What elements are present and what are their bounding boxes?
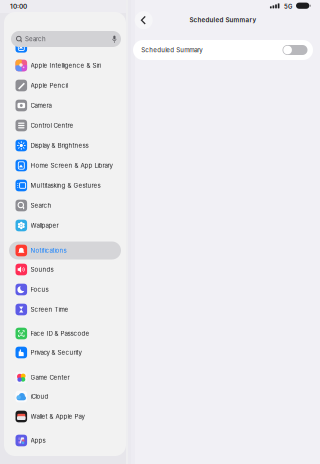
staticText: Camera bbox=[30, 102, 51, 109]
button[interactable]: Sounds bbox=[9, 260, 121, 278]
button[interactable]: Screen Time bbox=[9, 300, 121, 318]
staticText: Apple Intelligence & Siri bbox=[30, 62, 100, 69]
button[interactable]: Privacy & Security bbox=[9, 343, 121, 361]
button[interactable]: Multitasking & Gestures bbox=[9, 176, 121, 194]
staticText: Sounds bbox=[30, 266, 53, 273]
button[interactable]: Home Screen & App Library bbox=[9, 156, 121, 174]
button[interactable]: Camera bbox=[9, 96, 121, 114]
staticText: Wallpaper bbox=[30, 222, 58, 229]
button[interactable]: Wallet & Apple Pay bbox=[9, 407, 121, 425]
button[interactable]: Back bbox=[135, 11, 153, 29]
staticText: Apple Pencil bbox=[30, 82, 67, 89]
button[interactable]: Face ID & Passcode bbox=[9, 324, 121, 342]
button[interactable]: Display & Brightness bbox=[9, 136, 121, 154]
button[interactable]: Game Center bbox=[9, 368, 121, 386]
staticText: 5G bbox=[284, 3, 292, 10]
staticText: 10:00 bbox=[10, 3, 27, 10]
staticText: Apps bbox=[30, 437, 45, 444]
button[interactable]: Wallpaper bbox=[9, 216, 121, 234]
button[interactable]: Scheduled Summary bbox=[133, 40, 313, 60]
button[interactable]: iCloud bbox=[9, 387, 121, 405]
button[interactable]: Notifications bbox=[9, 241, 121, 259]
staticText: Home Screen & App Library bbox=[30, 162, 112, 169]
button[interactable]: Apple Pencil bbox=[9, 76, 121, 94]
staticText: Display & Brightness bbox=[30, 142, 88, 149]
button[interactable]: Apps bbox=[9, 431, 121, 449]
staticText: Scheduled Summary bbox=[189, 16, 256, 24]
staticText: Privacy & Security bbox=[30, 349, 81, 356]
button[interactable]: Search bbox=[9, 196, 121, 214]
staticText: Search bbox=[30, 202, 51, 209]
staticText: Game Center bbox=[30, 374, 69, 381]
staticText: Scheduled Summary bbox=[141, 46, 202, 54]
button[interactable]: Focus bbox=[9, 280, 121, 298]
staticText: Search bbox=[25, 35, 46, 43]
staticText: Control Centre bbox=[30, 122, 73, 129]
staticText: Multitasking & Gestures bbox=[30, 182, 100, 189]
staticText: Focus bbox=[30, 286, 48, 293]
staticText: iCloud bbox=[30, 393, 48, 400]
staticText: Wallet & Apple Pay bbox=[30, 413, 84, 420]
button[interactable]: Search bbox=[11, 31, 121, 47]
staticText: Notifications bbox=[30, 247, 66, 254]
button[interactable]: Control Centre bbox=[9, 116, 121, 134]
button[interactable]: Apple Intelligence & Siri bbox=[9, 56, 121, 74]
staticText: Face ID & Passcode bbox=[30, 330, 89, 337]
staticText: Screen Time bbox=[30, 306, 68, 313]
